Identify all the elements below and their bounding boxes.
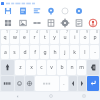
staticText: q <box>3 34 7 41</box>
button[interactable]: Shape <box>58 5 72 17</box>
button[interactable]: c <box>37 60 46 75</box>
button[interactable]: Home <box>34 92 67 100</box>
button[interactable]: z <box>15 60 25 75</box>
staticText: 7 <box>66 30 68 34</box>
button[interactable]: g <box>40 45 49 59</box>
staticText: v <box>50 64 53 71</box>
button[interactable]: r <box>30 30 39 44</box>
button[interactable]: Table <box>44 17 58 29</box>
button[interactable]: Right <box>78 76 86 91</box>
button[interactable]: l <box>80 45 89 59</box>
button[interactable]: n <box>67 60 76 75</box>
staticText: 2 <box>16 30 18 34</box>
button[interactable]: Title <box>6 2 32 5</box>
button[interactable]: e <box>20 30 29 44</box>
button[interactable]: Color <box>72 5 86 17</box>
button[interactable]: h <box>50 45 59 59</box>
button[interactable]: Align <box>30 5 44 17</box>
button[interactable]: Image <box>15 17 30 29</box>
button[interactable]: Insert <box>44 5 58 17</box>
button[interactable]: Enter <box>87 76 99 91</box>
button[interactable]: Notes <box>72 17 86 29</box>
button[interactable]: t <box>40 30 49 44</box>
button[interactable]: m <box>77 60 86 75</box>
button[interactable]: Link <box>30 17 44 29</box>
staticText: k <box>73 49 76 56</box>
button[interactable]: Backspace <box>87 60 99 75</box>
button[interactable]: . <box>60 76 68 91</box>
staticText: g <box>43 49 47 56</box>
button[interactable]: u <box>60 30 69 44</box>
button[interactable]: v <box>47 60 56 75</box>
button[interactable]: Emoji <box>15 76 24 91</box>
staticText: d <box>23 49 27 56</box>
button[interactable]: w <box>10 30 19 44</box>
staticText: u <box>63 34 67 41</box>
staticText: w <box>13 34 17 41</box>
button[interactable]: i <box>70 30 79 44</box>
button[interactable]: Space <box>35 76 59 91</box>
staticText: o <box>83 34 87 41</box>
staticText: b <box>60 64 64 71</box>
staticText: 8 <box>76 30 78 34</box>
staticText: z <box>19 64 22 71</box>
button[interactable]: Record <box>86 17 100 29</box>
staticText: l <box>84 49 86 56</box>
staticText: f <box>34 49 36 56</box>
button[interactable]: y <box>50 30 59 44</box>
staticText: h <box>53 49 57 56</box>
staticText: s <box>13 49 16 56</box>
staticText: 5 <box>46 30 48 34</box>
button[interactable]: Shift <box>1 60 14 75</box>
button[interactable]: Back <box>0 92 34 100</box>
staticText: p <box>93 34 97 41</box>
button[interactable]: Save <box>0 5 15 17</box>
staticText: c <box>40 64 43 71</box>
staticText: t <box>44 34 46 41</box>
staticText: r <box>33 34 36 41</box>
staticText: a <box>4 49 7 56</box>
staticText: m <box>79 64 84 71</box>
button[interactable]: Pages <box>15 5 30 17</box>
staticText: 3 <box>26 30 28 34</box>
button[interactable]: d <box>20 45 29 59</box>
button[interactable]: Symbols <box>1 76 14 91</box>
staticText: . <box>63 80 65 87</box>
button[interactable]: Settings <box>58 17 72 29</box>
button[interactable]: x <box>26 60 36 75</box>
button[interactable]: - <box>90 45 99 59</box>
button[interactable]: o <box>80 30 89 44</box>
staticText: 1 <box>6 30 8 34</box>
button[interactable]: Document <box>1 2 4 5</box>
button[interactable]: s <box>10 45 19 59</box>
button[interactable]: Grid <box>0 17 15 29</box>
staticText: i <box>74 34 76 41</box>
button[interactable]: Left <box>69 76 77 91</box>
staticText: j <box>64 49 66 56</box>
staticText: e <box>23 34 26 41</box>
staticText: 6 <box>56 30 58 34</box>
staticText: 0 <box>96 30 98 34</box>
staticText: y <box>53 34 56 41</box>
button[interactable]: Recents <box>67 92 100 100</box>
staticText: 9 <box>86 30 88 34</box>
button[interactable]: f <box>30 45 39 59</box>
button[interactable]: k <box>70 45 79 59</box>
button[interactable]: Language <box>25 76 34 91</box>
staticText: - <box>94 49 96 56</box>
button[interactable]: p <box>90 30 99 44</box>
button[interactable]: q <box>1 30 9 44</box>
staticText: 4 <box>36 30 38 34</box>
staticText: n <box>70 64 74 71</box>
button[interactable]: j <box>60 45 69 59</box>
button[interactable]: b <box>57 60 66 75</box>
staticText: x <box>30 64 33 71</box>
button[interactable]: a <box>1 45 9 59</box>
